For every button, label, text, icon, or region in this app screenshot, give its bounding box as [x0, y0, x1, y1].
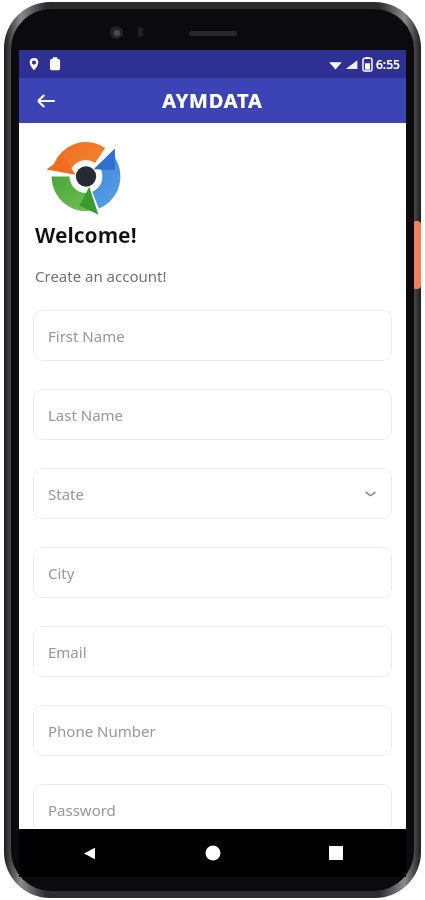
staticText: State: [48, 484, 84, 504]
staticText: First Name: [48, 326, 125, 346]
staticText: Last Name: [48, 405, 124, 425]
button[interactable]: Phone Number: [33, 705, 392, 756]
staticText: Password: [48, 800, 116, 820]
button[interactable]: Password: [33, 784, 392, 835]
button[interactable]: Recents: [316, 833, 356, 873]
button[interactable]: Back: [69, 833, 109, 873]
button[interactable]: First Name: [33, 310, 392, 361]
staticText: Phone Number: [48, 721, 156, 741]
staticText: 6:55: [376, 56, 400, 72]
button[interactable]: Email: [33, 626, 392, 677]
button[interactable]: Back: [25, 80, 67, 122]
staticText: AYMDATA: [19, 87, 406, 114]
staticText: Email: [48, 642, 87, 662]
staticText: Create an account!: [35, 266, 167, 286]
button[interactable]: State: [33, 468, 392, 519]
button[interactable]: City: [33, 547, 392, 598]
staticText: City: [48, 563, 75, 583]
button[interactable]: Home: [193, 833, 233, 873]
staticText: Welcome!: [35, 221, 137, 250]
button[interactable]: Last Name: [33, 389, 392, 440]
